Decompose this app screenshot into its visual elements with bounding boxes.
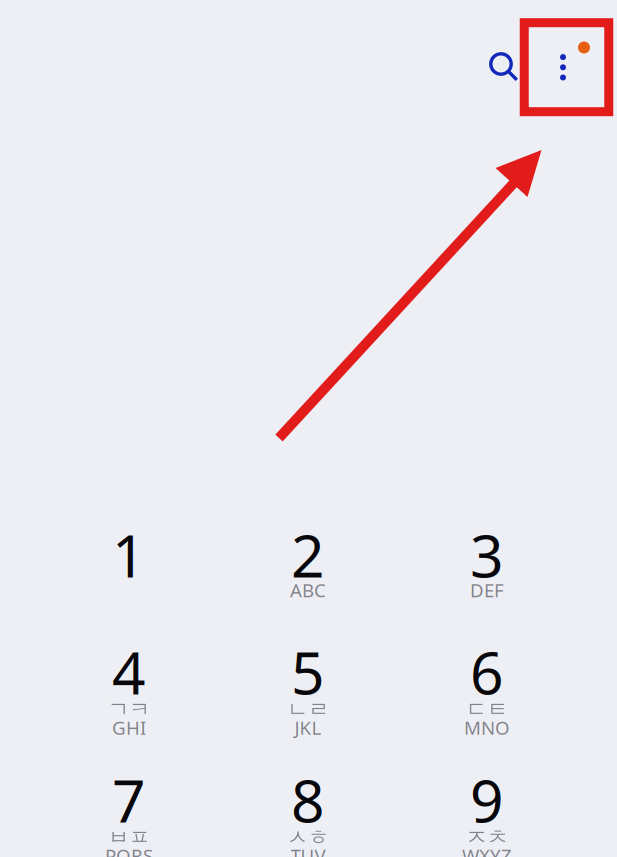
staticText: JKL <box>294 715 321 740</box>
staticText: WXYZ <box>462 843 512 857</box>
staticText: 5 <box>291 633 325 711</box>
button[interactable]: 4 <box>39 636 218 764</box>
button[interactable]: 9 <box>397 764 576 857</box>
staticText: ㄷㅌ <box>466 696 508 723</box>
button[interactable]: Search <box>480 43 528 91</box>
button[interactable]: 6 <box>397 636 576 764</box>
staticText: ㄱㅋ <box>108 696 150 723</box>
staticText: TUV <box>290 843 325 857</box>
staticText: 3 <box>470 516 504 594</box>
staticText: MNO <box>464 715 510 740</box>
staticText: ㄴㄹ <box>287 696 329 723</box>
staticText: 1 <box>112 516 146 594</box>
button[interactable]: 1 <box>39 519 218 647</box>
button[interactable]: 7 <box>39 764 218 857</box>
staticText: ABC <box>290 578 326 602</box>
staticText: PQRS <box>105 843 153 857</box>
staticText: DEF <box>470 578 504 602</box>
button[interactable]: 5 <box>218 636 397 764</box>
staticText: 7 <box>112 761 146 839</box>
staticText: 4 <box>112 633 146 711</box>
staticText: 6 <box>470 633 504 711</box>
staticText: 8 <box>291 761 325 839</box>
staticText: 2 <box>291 516 325 594</box>
staticText: ㅂㅍ <box>108 824 150 851</box>
staticText: 9 <box>470 761 504 839</box>
button[interactable]: More options <box>543 30 605 104</box>
staticText: GHI <box>112 715 146 740</box>
staticText: ㅈㅊ <box>466 824 508 851</box>
staticText: ㅅㅎ <box>287 824 329 851</box>
button[interactable]: 2 <box>218 519 397 647</box>
button[interactable]: 3 <box>397 519 576 647</box>
button[interactable]: 8 <box>218 764 397 857</box>
